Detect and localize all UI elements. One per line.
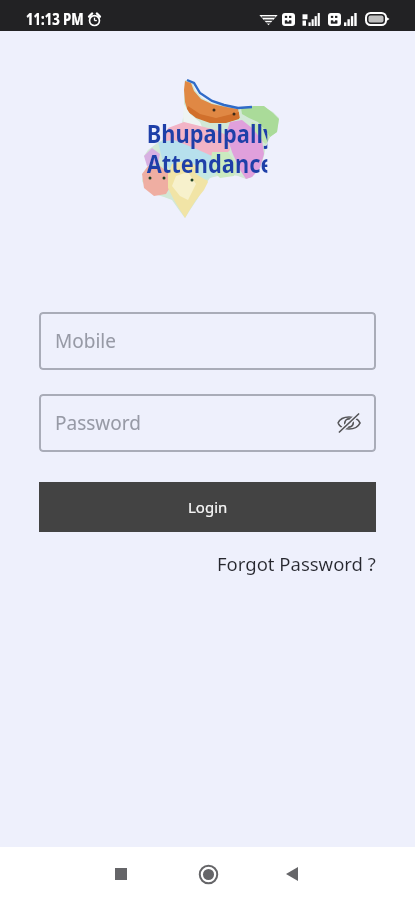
staticText: Password xyxy=(55,410,141,436)
button[interactable]: Password xyxy=(39,394,376,452)
staticText: Attendance xyxy=(147,146,267,180)
staticText: Login xyxy=(188,497,228,517)
staticText: Forgot Password ? xyxy=(217,551,376,576)
button[interactable]: Home xyxy=(188,854,228,894)
staticText: 11:13 PM xyxy=(26,8,84,30)
button[interactable]: Back xyxy=(272,854,312,894)
button[interactable]: Forgot Password ? xyxy=(215,548,378,579)
button[interactable]: Mobile xyxy=(39,312,376,370)
button[interactable]: Recent apps xyxy=(101,854,141,894)
button[interactable]: Toggle password visibility xyxy=(334,408,364,438)
staticText: Bhupalpally xyxy=(147,116,267,150)
button[interactable]: Login xyxy=(39,482,376,532)
staticText: Mobile xyxy=(55,328,116,354)
